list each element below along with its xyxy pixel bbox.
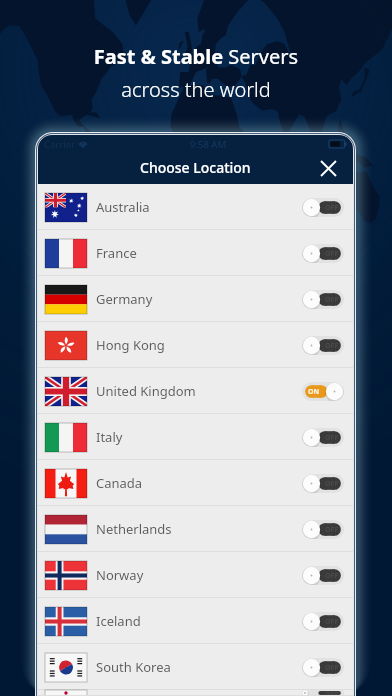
staticText: Choose Location [140, 158, 251, 177]
staticText: France [96, 244, 137, 262]
button[interactable]: Toggle off [302, 690, 344, 696]
button[interactable]: Toggle off [302, 336, 344, 355]
staticText: Japan [96, 690, 131, 696]
staticText: OFF [325, 341, 339, 351]
staticText: OFF [325, 571, 339, 581]
button[interactable]: Italy [38, 414, 353, 460]
staticText: Canada [96, 474, 143, 492]
button[interactable]: Toggle off [302, 290, 344, 309]
staticText: Germany [96, 290, 153, 308]
staticText: Hong Kong [96, 336, 165, 354]
staticText: OFF [325, 295, 339, 305]
button[interactable]: Toggle off [302, 198, 344, 217]
staticText: OFF [325, 690, 339, 696]
button[interactable]: Toggle off [302, 428, 344, 447]
button[interactable]: Germany [38, 276, 353, 322]
button[interactable]: Toggle off [302, 566, 344, 585]
button[interactable]: United Kingdom [38, 368, 353, 414]
staticText: ON [308, 387, 320, 397]
button[interactable]: Netherlands [38, 506, 353, 552]
button[interactable]: Norway [38, 552, 353, 598]
staticText: Italy [96, 428, 123, 446]
button[interactable]: Close [315, 155, 341, 181]
staticText: OFF [325, 203, 339, 213]
staticText: Carrier [44, 138, 75, 151]
staticText: Iceland [96, 612, 141, 630]
staticText: Australia [96, 198, 150, 216]
button[interactable]: Toggle off [302, 612, 344, 631]
staticText: OFF [325, 479, 339, 489]
staticText: OFF [325, 249, 339, 259]
staticText: Norway [96, 566, 144, 584]
staticText: Netherlands [96, 520, 172, 538]
staticText: OFF [325, 433, 339, 443]
button[interactable]: Toggle on [302, 382, 344, 401]
button[interactable]: Toggle off [302, 244, 344, 263]
button[interactable]: South Korea [38, 644, 353, 690]
staticText: OFF [325, 617, 339, 627]
button[interactable]: Toggle off [302, 474, 344, 493]
button[interactable]: Iceland [38, 598, 353, 644]
button[interactable]: Toggle off [302, 658, 344, 677]
staticText: United Kingdom [96, 382, 196, 400]
staticText: OFF [325, 663, 339, 673]
staticText: OFF [325, 525, 339, 535]
staticText: across the world [0, 76, 392, 103]
staticText: 9:58 AM [190, 138, 227, 151]
staticText: Fast & Stable Servers [0, 43, 392, 70]
button[interactable]: Hong Kong [38, 322, 353, 368]
button[interactable]: Toggle off [302, 520, 344, 539]
button[interactable]: Canada [38, 460, 353, 506]
button[interactable]: Japan [38, 690, 353, 696]
button[interactable]: France [38, 230, 353, 276]
staticText: South Korea [96, 658, 171, 676]
button[interactable]: Australia [38, 184, 353, 230]
